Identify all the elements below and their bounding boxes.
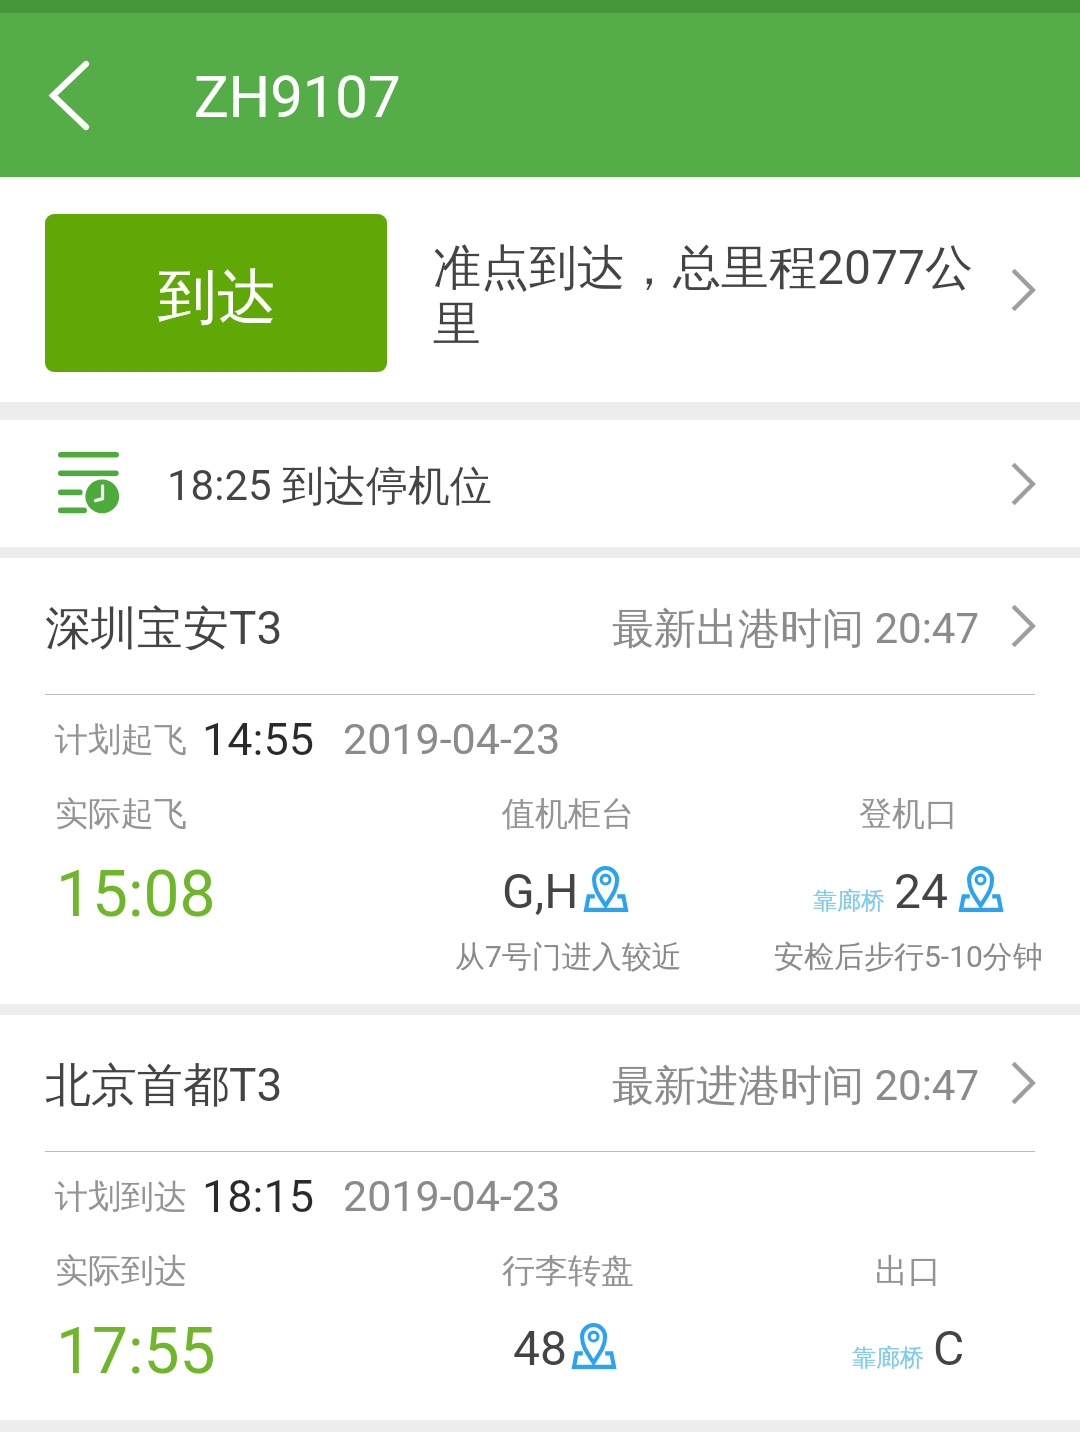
- staticText: 18:15: [202, 1170, 315, 1223]
- staticText: 计划起飞: [55, 719, 187, 761]
- staticText: 48: [513, 1320, 567, 1376]
- staticText: 北京首都T3: [45, 1057, 283, 1115]
- button[interactable]: Back: [0, 13, 140, 177]
- staticText: 实际起飞: [55, 793, 187, 835]
- staticText: 15:08: [56, 857, 216, 932]
- staticText: G,H: [502, 863, 579, 919]
- button[interactable]: 深圳宝安T3: [0, 558, 1080, 694]
- staticText: 登机口: [859, 793, 958, 835]
- staticText: 实际到达: [55, 1250, 187, 1292]
- staticText: 到达: [158, 260, 276, 334]
- staticText: 2019-04-23: [343, 714, 561, 764]
- staticText: 17:55: [56, 1314, 216, 1389]
- button[interactable]: 到达: [0, 177, 1080, 402]
- staticText: 最新出港时间 20:47: [612, 603, 980, 656]
- staticText: 准点到达，总里程2077公里: [433, 238, 993, 354]
- staticText: 14:55: [202, 713, 315, 766]
- staticText: 出口: [875, 1250, 941, 1292]
- staticText: 计划到达: [55, 1176, 187, 1218]
- button[interactable]: 18:25 到达停机位: [0, 420, 1080, 547]
- staticText: C: [933, 1320, 965, 1376]
- staticText: 值机柜台: [502, 793, 634, 835]
- staticText: 深圳宝安T3: [45, 600, 283, 658]
- staticText: 行李转盘: [502, 1250, 634, 1292]
- staticText: 2019-04-23: [343, 1171, 561, 1221]
- staticText: 靠廊桥: [813, 886, 885, 916]
- staticText: 最新进港时间 20:47: [612, 1060, 980, 1113]
- staticText: ZH9107: [194, 63, 401, 131]
- staticText: 24: [894, 863, 948, 919]
- staticText: 18:25 到达停机位: [167, 460, 493, 513]
- staticText: 安检后步行5-10分钟: [774, 938, 1043, 976]
- staticText: 靠廊桥: [852, 1343, 924, 1373]
- staticText: 从7号门进入较近: [455, 938, 682, 976]
- button[interactable]: 北京首都T3: [0, 1015, 1080, 1151]
